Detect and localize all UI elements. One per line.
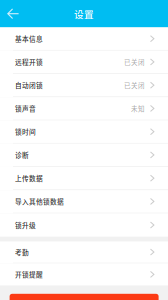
button[interactable]: Back	[0, 0, 27, 27]
button[interactable]: 锁声音	[0, 97, 168, 120]
button[interactable]: 自动闭锁	[0, 74, 168, 97]
button[interactable]: 考勤	[0, 241, 168, 263]
staticText: 已关闭	[124, 80, 145, 90]
staticText: 锁声音	[15, 104, 36, 113]
staticText: 已关闭	[124, 57, 145, 67]
staticText: 考勤	[15, 247, 29, 257]
staticText: 基本信息	[15, 34, 43, 43]
staticText: 自动闭锁	[15, 80, 43, 90]
button[interactable]: 导入其他锁数据	[0, 190, 168, 213]
button[interactable]	[10, 294, 159, 300]
button[interactable]: 锁升级	[0, 213, 168, 237]
button[interactable]: 基本信息	[0, 27, 168, 51]
staticText: 锁时间	[15, 127, 36, 136]
staticText: 开锁提醒	[15, 270, 43, 279]
staticText: 锁升级	[15, 220, 36, 230]
button[interactable]: 上传数据	[0, 167, 168, 190]
staticText: 远程开锁	[15, 57, 43, 67]
button[interactable]: 开锁提醒	[0, 263, 168, 285]
button[interactable]: 远程开锁	[0, 51, 168, 74]
staticText: 导入其他锁数据	[15, 197, 64, 206]
staticText: 设置	[74, 7, 94, 21]
button[interactable]: 诊断	[0, 144, 168, 167]
button[interactable]: 锁时间	[0, 120, 168, 144]
staticText: 上传数据	[15, 173, 43, 183]
staticText: 诊断	[15, 150, 29, 160]
staticText: 未知	[131, 104, 145, 113]
